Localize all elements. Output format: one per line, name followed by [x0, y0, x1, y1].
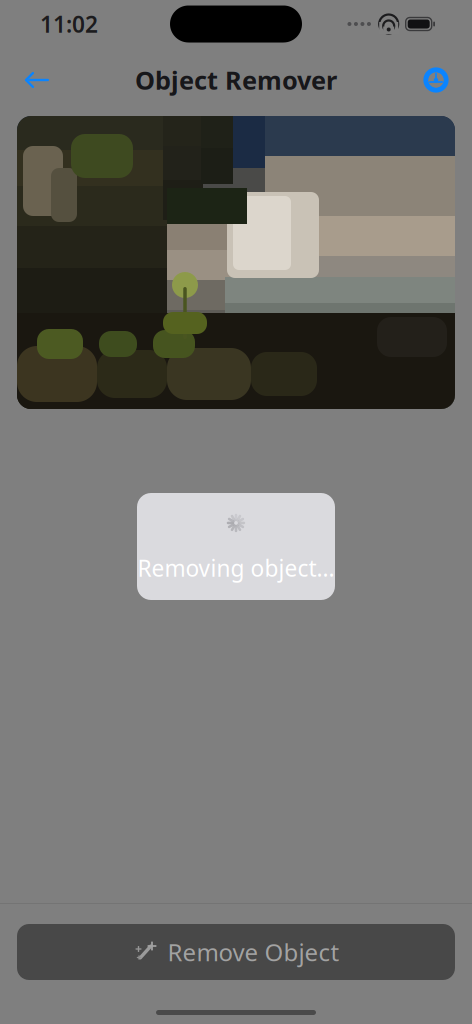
button[interactable]: Remove Object — [17, 924, 455, 980]
staticText: Removing object... — [137, 553, 334, 583]
staticText: 11:02 — [40, 9, 98, 39]
button[interactable]: Settings — [414, 58, 458, 102]
staticText: Object Remover — [135, 63, 337, 97]
staticText: Remove Object — [167, 936, 339, 968]
button[interactable]: Back — [14, 58, 58, 102]
